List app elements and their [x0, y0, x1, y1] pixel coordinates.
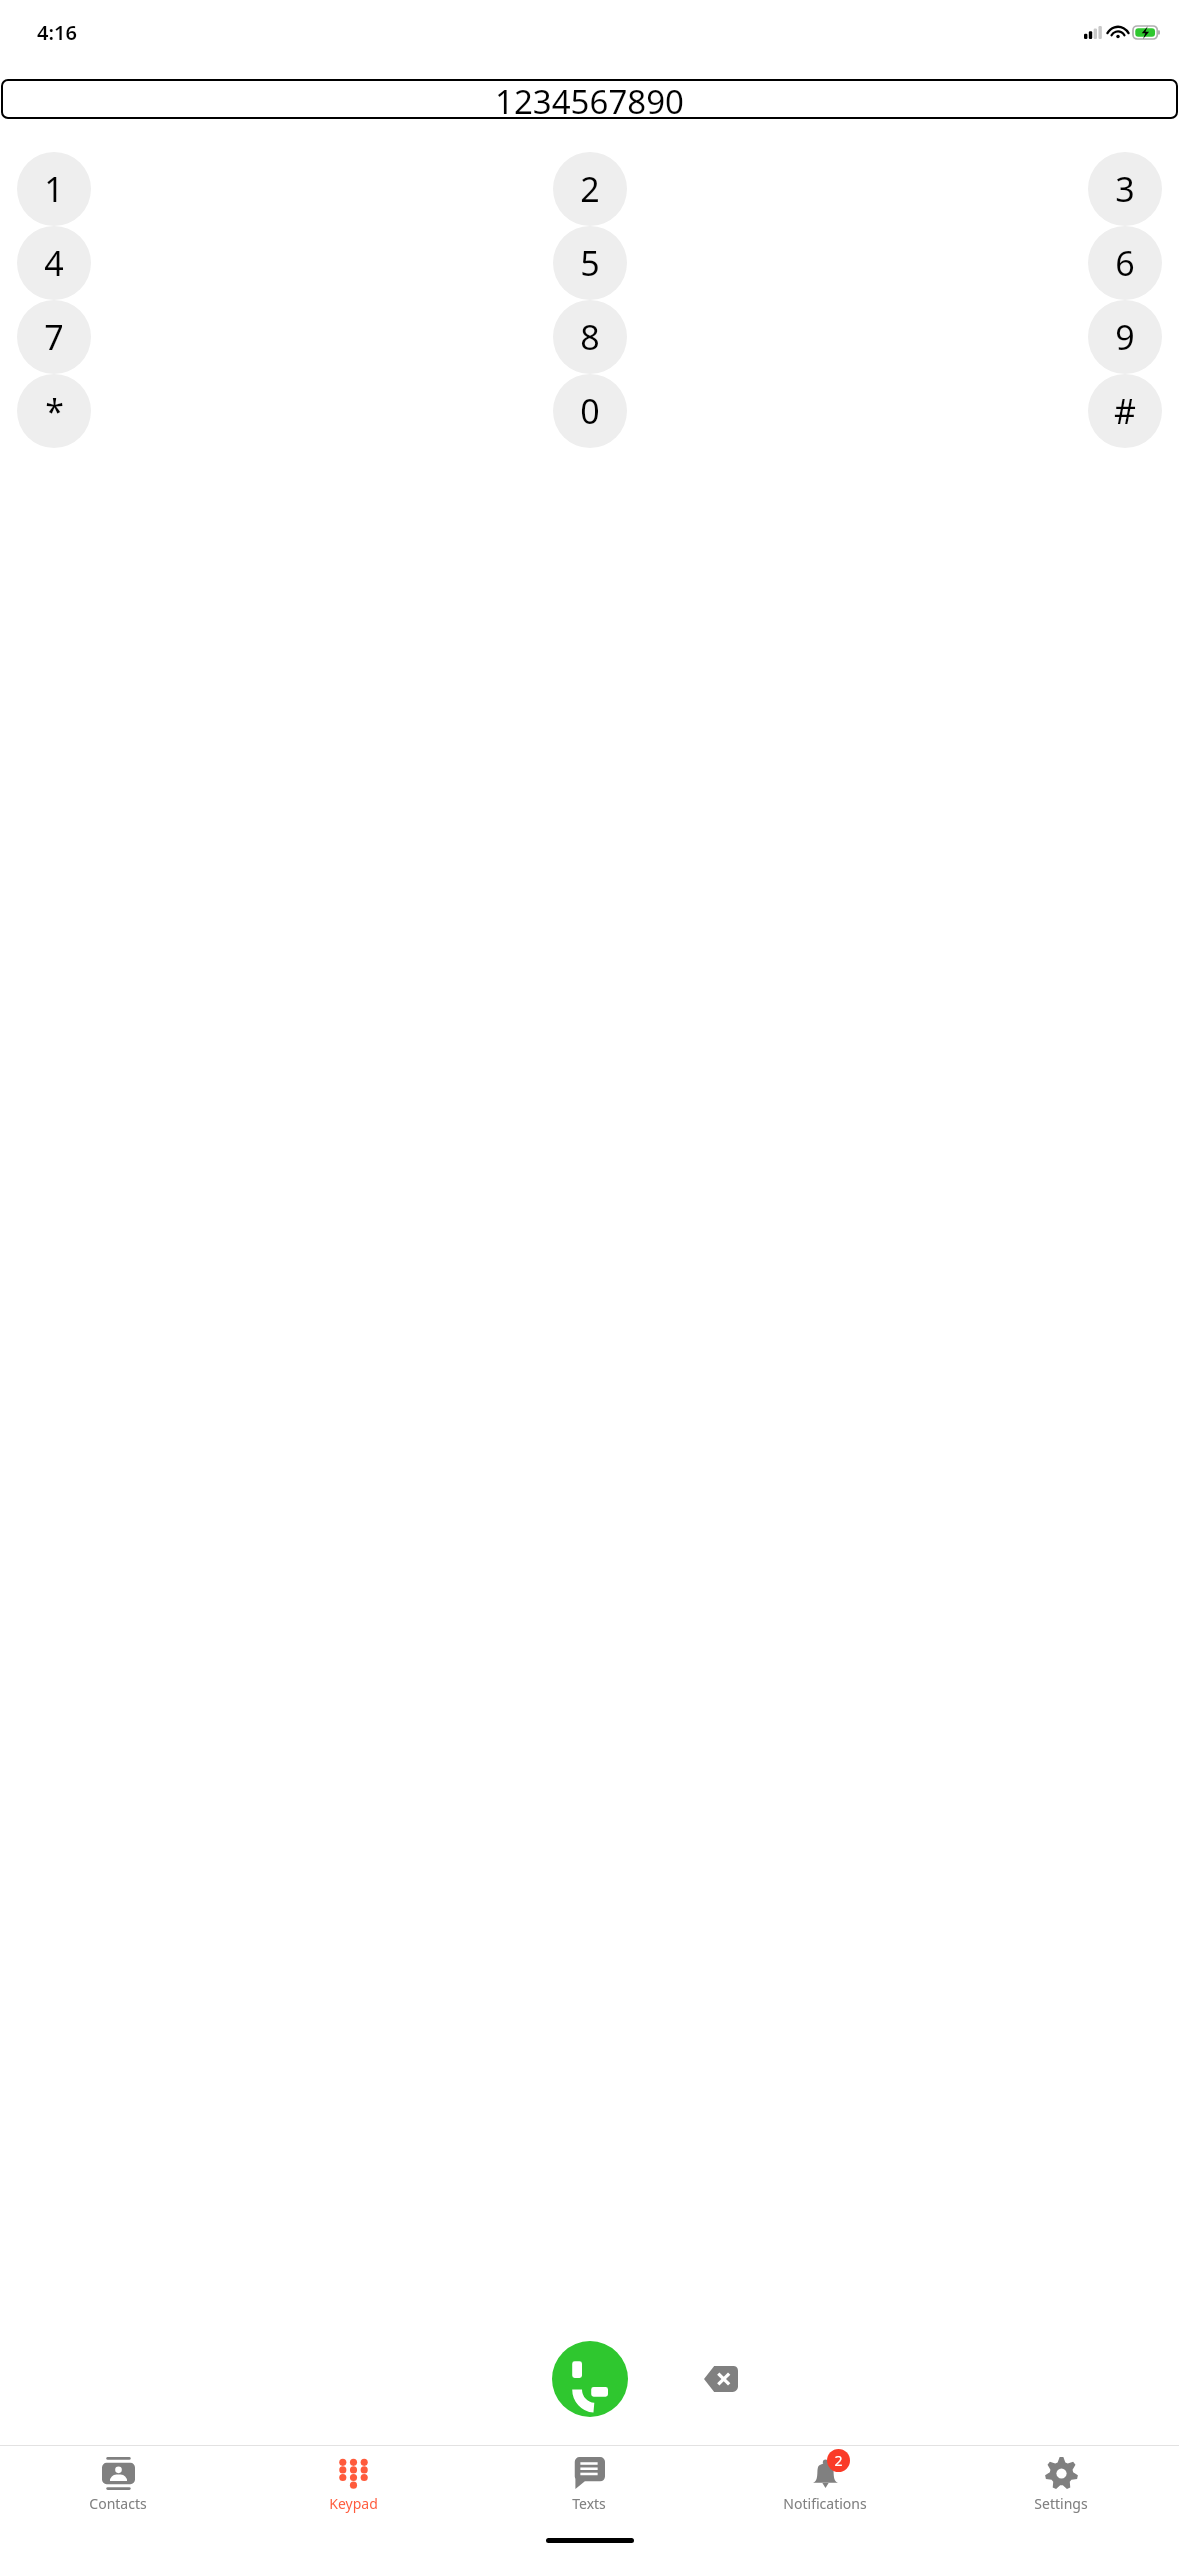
staticText: 1234567890 — [495, 79, 684, 119]
button[interactable]: Settings — [943, 2446, 1179, 2524]
button[interactable]: 5 — [553, 226, 627, 300]
button[interactable]: 3 — [1088, 152, 1162, 226]
staticText: 6 — [1115, 240, 1135, 286]
staticText: 9 — [1115, 314, 1135, 360]
button[interactable]: 8 — [553, 300, 627, 374]
staticText: 3 — [1115, 166, 1135, 212]
button[interactable]: 1 — [17, 152, 91, 226]
button[interactable]: Texts — [471, 2446, 707, 2524]
button[interactable]: Contacts — [0, 2446, 235, 2524]
button[interactable]: 6 — [1088, 226, 1162, 300]
staticText: 8 — [580, 314, 600, 360]
button[interactable]: Backspace — [698, 2362, 744, 2396]
staticText: Contacts — [89, 2494, 147, 2513]
staticText: Settings — [1034, 2494, 1088, 2513]
staticText: 5 — [580, 240, 600, 286]
button[interactable]: 1234567890 — [1, 79, 1178, 119]
staticText: * — [45, 388, 64, 434]
button[interactable]: Call — [552, 2341, 628, 2417]
staticText: Keypad — [329, 2494, 378, 2513]
button[interactable]: Keypad — [235, 2446, 471, 2524]
button[interactable]: 4 — [17, 226, 91, 300]
staticText: 2 — [834, 2451, 843, 2470]
staticText: 1 — [44, 166, 64, 212]
button[interactable]: 0 — [553, 374, 627, 448]
staticText: 4 — [44, 240, 64, 286]
button[interactable]: # — [1088, 374, 1162, 448]
staticText: Notifications — [783, 2494, 867, 2513]
button[interactable]: 2 — [553, 152, 627, 226]
button[interactable]: 7 — [17, 300, 91, 374]
staticText: 0 — [580, 388, 600, 434]
staticText: # — [1114, 388, 1136, 434]
staticText: Texts — [572, 2494, 606, 2513]
staticText: 2 — [580, 166, 600, 212]
button[interactable]: * — [17, 374, 91, 448]
staticText: 7 — [44, 314, 64, 360]
staticText: 4:16 — [37, 19, 77, 46]
button[interactable]: 9 — [1088, 300, 1162, 374]
button[interactable]: 2 — [707, 2446, 943, 2524]
